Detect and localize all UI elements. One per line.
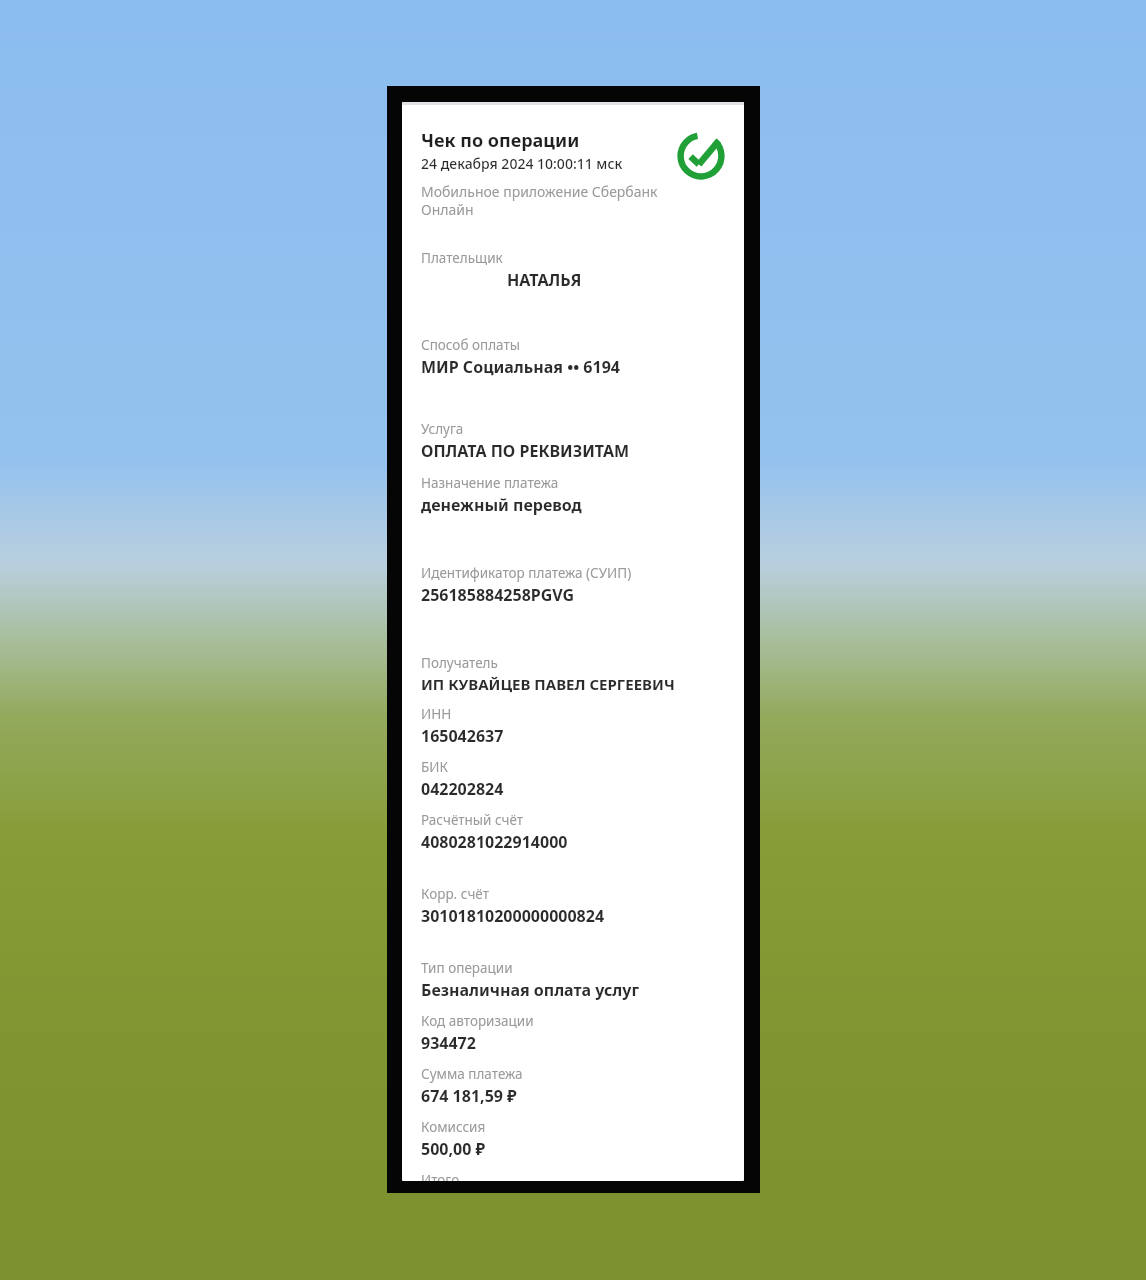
button[interactable]: Тип операции bbox=[421, 959, 730, 1001]
staticText: Безналичная оплата услуг bbox=[421, 979, 640, 1001]
staticText: 934472 bbox=[421, 1032, 476, 1054]
staticText: МИР Социальная •• 6194 bbox=[421, 356, 620, 378]
staticText: Чек по операции bbox=[421, 128, 580, 153]
staticText: Плательщик bbox=[421, 249, 503, 267]
staticText: Комиссия bbox=[421, 1118, 486, 1136]
staticText: Расчётный счёт bbox=[421, 811, 524, 829]
button[interactable]: Способ оплаты bbox=[421, 336, 730, 378]
button[interactable]: БИК bbox=[421, 758, 730, 800]
staticText: БИК bbox=[421, 758, 448, 776]
staticText: 674 181,59 ₽ bbox=[421, 1085, 517, 1107]
button[interactable]: Назначение платежа bbox=[421, 474, 730, 516]
staticText: Идентификатор платежа (СУИП) bbox=[421, 564, 632, 582]
button[interactable]: ИНН bbox=[421, 705, 730, 747]
button[interactable]: Комиссия bbox=[421, 1118, 730, 1160]
staticText: Итого bbox=[421, 1171, 460, 1181]
staticText: 042202824 bbox=[421, 778, 504, 800]
staticText: 4080281022914000 bbox=[421, 831, 568, 853]
staticText: Мобильное приложение Сбербанк Онлайн bbox=[421, 182, 662, 219]
button[interactable]: Услуга bbox=[421, 420, 730, 462]
staticText: Сумма платежа bbox=[421, 1065, 523, 1083]
staticText: 256185884258PGVG bbox=[421, 584, 575, 606]
button[interactable]: Корр. счёт bbox=[421, 885, 730, 927]
staticText: Тип операции bbox=[421, 959, 513, 977]
staticText: 24 декабря 2024 10:00:11 мск bbox=[421, 154, 623, 173]
button[interactable]: Плательщик bbox=[421, 249, 730, 291]
button[interactable]: Сумма платежа bbox=[421, 1065, 730, 1107]
staticText: денежный перевод bbox=[421, 494, 582, 516]
staticText: НАТАЛЬЯ bbox=[507, 269, 582, 291]
staticText: Назначение платежа bbox=[421, 474, 559, 492]
staticText: Код авторизации bbox=[421, 1012, 534, 1030]
button[interactable]: Код авторизации bbox=[421, 1012, 730, 1054]
staticText: ИНН bbox=[421, 705, 452, 723]
button[interactable]: Итого bbox=[421, 1171, 730, 1181]
staticText: Услуга bbox=[421, 420, 464, 438]
other: Sberbank logo, operation successful bbox=[675, 130, 727, 182]
button[interactable]: Расчётный счёт bbox=[421, 811, 730, 853]
button[interactable]: Получатель bbox=[421, 654, 730, 694]
staticText: 500,00 ₽ bbox=[421, 1138, 486, 1160]
staticText: Получатель bbox=[421, 654, 498, 672]
staticText: 165042637 bbox=[421, 725, 504, 747]
staticText: Корр. счёт bbox=[421, 885, 489, 903]
staticText: 30101810200000000824 bbox=[421, 905, 605, 927]
staticText: Способ оплаты bbox=[421, 336, 520, 354]
staticText: ОПЛАТА ПО РЕКВИЗИТАМ bbox=[421, 440, 630, 462]
staticText: ИП КУВАЙЦЕВ ПАВЕЛ СЕРГЕЕВИЧ bbox=[421, 674, 675, 694]
button[interactable]: Идентификатор платежа (СУИП) bbox=[421, 564, 730, 606]
